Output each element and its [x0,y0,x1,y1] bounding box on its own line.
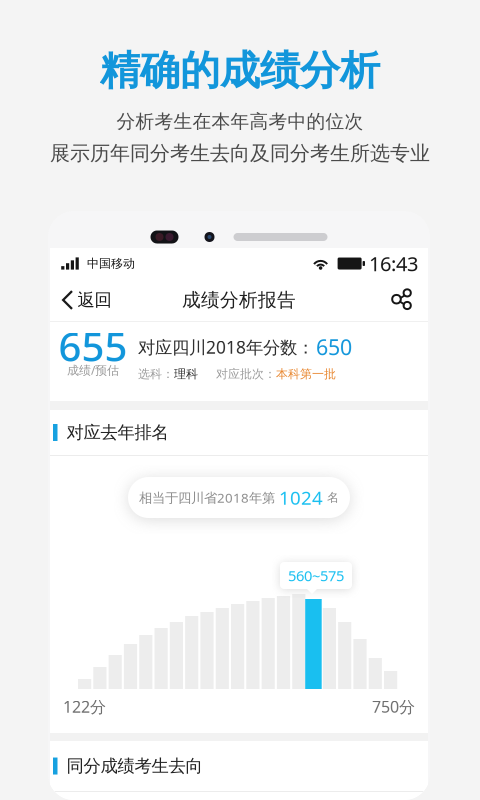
staticText: 655 [58,319,127,372]
staticText: 展示历年同分考生去向及同分考生所选专业 [50,141,430,166]
staticText: 560~575 [288,566,344,585]
staticText: 返回 [77,289,111,311]
staticText: 750分 [372,696,415,717]
staticText: 中国移动 [87,256,135,271]
staticText: 相当于四川省2018年第 [139,489,275,506]
staticText: 同分成绩考生去向 [66,755,202,777]
staticText: 1024 [279,485,323,510]
staticText: 成绩/预估 [67,362,119,378]
staticText: 对应批次： [216,367,276,381]
button[interactable]: 分享 [378,279,425,321]
staticText: 理科 [174,367,198,381]
staticText: 精确的成绩分析 [100,46,380,95]
staticText: 对应去年排名 [66,422,168,443]
staticText: 16:43 [369,250,418,277]
staticText: 分析考生在本年高考中的位次 [116,110,363,133]
staticText: 成绩分析报告 [182,288,296,311]
staticText: 本科第一批 [276,367,336,381]
staticText: 选科： [138,367,174,381]
staticText: 名 [327,490,339,505]
staticText: 122分 [63,696,106,717]
button[interactable]: 返回 [53,279,121,321]
staticText: 对应四川2018年分数： [138,335,314,358]
staticText: 650 [316,333,352,361]
